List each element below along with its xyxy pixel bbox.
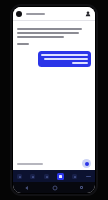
button[interactable]: Briefcase (67, 170, 81, 182)
button[interactable]: Profile photo (16, 11, 22, 17)
button[interactable] (17, 28, 82, 38)
button[interactable]: Contacts (39, 170, 53, 182)
button[interactable] (38, 51, 91, 67)
button[interactable]: Messages (53, 170, 67, 182)
button[interactable]: Home (41, 182, 68, 193)
button[interactable]: Account (84, 10, 92, 18)
button[interactable]: Back (13, 182, 41, 193)
button[interactable]: Dashboard (26, 170, 39, 182)
button[interactable]: Recent apps (68, 182, 95, 193)
button[interactable]: Home (13, 170, 26, 182)
button[interactable]: Send (82, 159, 91, 168)
button[interactable] (17, 163, 79, 165)
button[interactable]: More (81, 170, 95, 182)
